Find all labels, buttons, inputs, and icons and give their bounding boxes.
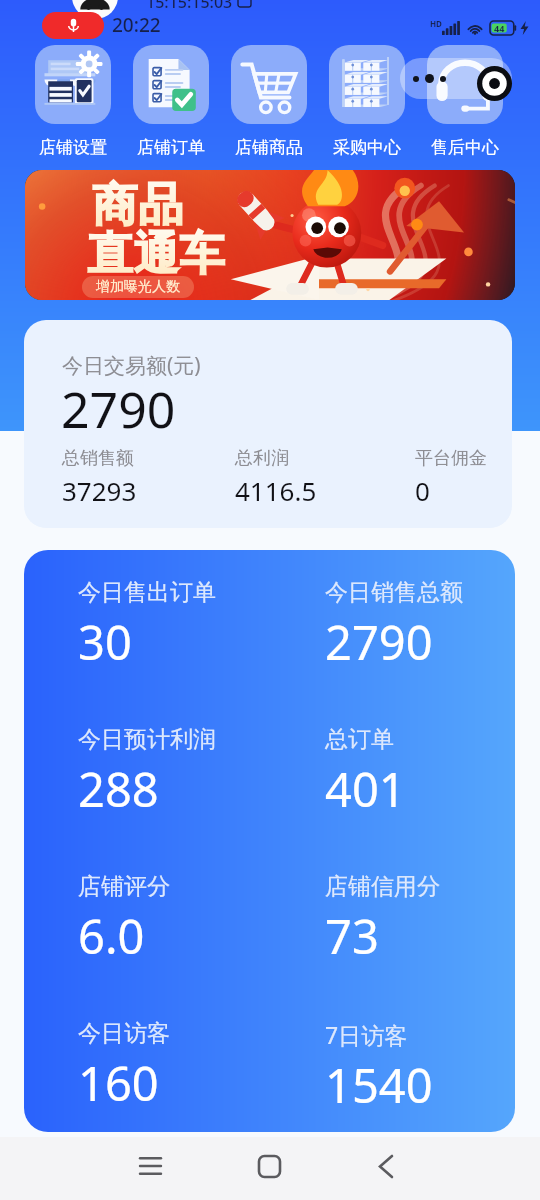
staticText: 采购中心 — [333, 137, 401, 158]
button[interactable]: 采购中心 — [329, 45, 405, 158]
staticText: 总销售额 — [62, 447, 134, 470]
staticText: 7日访客 — [325, 1019, 408, 1050]
staticText: 2790 — [325, 610, 433, 674]
staticText: 20:22 — [112, 12, 161, 38]
staticText: 售后中心 — [431, 137, 499, 158]
staticText: 平台佣金 — [415, 447, 487, 470]
staticText: 直通车 — [87, 226, 225, 283]
staticText: 15:15:15:03 — [146, 0, 233, 13]
button[interactable]: 店铺设置 — [35, 45, 111, 158]
button[interactable]: 今日售出订单 — [24, 550, 515, 1132]
staticText: 增加曝光人数 — [96, 278, 180, 296]
button[interactable]: Recording indicator — [42, 12, 104, 39]
staticText: 店铺商品 — [235, 137, 303, 158]
staticText: 1540 — [325, 1053, 433, 1117]
button[interactable]: 商品 — [25, 170, 515, 300]
staticText: 37293 — [62, 473, 137, 508]
staticText: 今日售出订单 — [78, 578, 216, 607]
button[interactable]: Home — [239, 1136, 299, 1196]
staticText: 73 — [325, 904, 379, 968]
staticText: 店铺信用分 — [325, 872, 440, 901]
staticText: 4116.5 — [235, 473, 317, 508]
staticText: 0 — [415, 473, 430, 508]
staticText: 今日预计利润 — [78, 725, 216, 754]
staticText: 店铺评分 — [78, 872, 170, 901]
staticText: 401 — [325, 757, 406, 821]
button[interactable]: Screen recorder controls — [400, 58, 512, 99]
staticText: 288 — [78, 757, 159, 821]
button[interactable]: Back — [356, 1136, 416, 1196]
staticText: 30 — [78, 610, 132, 674]
button[interactable]: 店铺商品 — [231, 45, 307, 158]
staticText: 总利润 — [235, 447, 289, 470]
staticText: 160 — [78, 1051, 159, 1115]
staticText: 今日访客 — [78, 1019, 170, 1048]
staticText: 2790 — [61, 375, 176, 443]
button[interactable]: 店铺订单 — [133, 45, 209, 158]
staticText: 店铺设置 — [39, 137, 107, 158]
staticText: 商品 — [92, 177, 184, 234]
staticText: 总订单 — [325, 725, 394, 754]
staticText: 店铺订单 — [137, 137, 205, 158]
staticText: HD — [430, 18, 442, 29]
staticText: 今日销售总额 — [325, 578, 463, 607]
staticText: 44 — [494, 22, 505, 34]
button[interactable]: 售后中心 — [427, 45, 503, 158]
staticText: 6.0 — [78, 904, 145, 968]
button[interactable]: 今日交易额(元) — [24, 320, 512, 528]
button[interactable]: Recent apps — [120, 1136, 180, 1196]
staticText: 今日交易额(元) — [62, 351, 201, 380]
